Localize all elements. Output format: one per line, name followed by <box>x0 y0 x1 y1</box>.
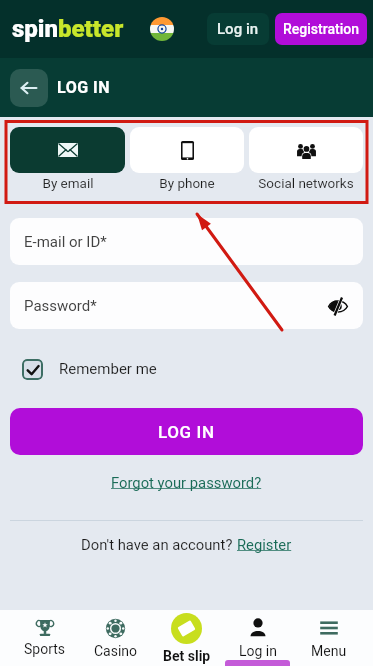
button[interactable]: By email <box>10 127 125 191</box>
button[interactable]: Language <box>150 17 174 41</box>
button[interactable]: By phone <box>130 127 244 191</box>
staticText: Bet slip <box>163 648 211 664</box>
button[interactable]: Casino <box>80 610 151 666</box>
staticText: Forgot your password? <box>111 474 262 491</box>
staticText: Social networks <box>258 175 354 191</box>
staticText: E-mail or ID* <box>24 233 107 251</box>
button[interactable]: Menu <box>293 610 364 666</box>
staticText: Registration <box>283 21 359 37</box>
staticText: Log in <box>239 643 277 659</box>
staticText: better <box>58 15 124 43</box>
button[interactable]: Log in <box>207 13 269 45</box>
staticText: spin <box>12 15 58 43</box>
button[interactable]: Log in <box>222 610 293 666</box>
staticText: Menu <box>311 643 347 659</box>
staticText: Remember me <box>59 360 157 378</box>
staticText: Password* <box>24 297 97 315</box>
staticText: By email <box>42 175 94 191</box>
button[interactable]: Forgot your password? <box>105 470 268 495</box>
staticText: By phone <box>159 175 215 191</box>
button[interactable]: Registration <box>275 13 367 45</box>
button[interactable]: LOG IN <box>10 408 363 455</box>
button[interactable]: Password* <box>10 282 363 329</box>
button[interactable]: Back <box>10 69 48 107</box>
staticText: LOG IN <box>57 78 111 97</box>
button[interactable]: Show password <box>326 294 350 318</box>
staticText: Sports <box>24 641 66 657</box>
staticText: LOG IN <box>158 422 215 442</box>
staticText: Register <box>237 536 292 553</box>
button[interactable]: Social networks <box>249 127 363 191</box>
button[interactable]: E-mail or ID* <box>10 218 363 265</box>
staticText: Casino <box>94 643 138 659</box>
button[interactable]: Sports <box>9 610 80 666</box>
staticText: Log in <box>217 20 259 38</box>
button[interactable]: Register <box>237 536 292 553</box>
staticText: Don't have an account? <box>81 536 237 553</box>
button[interactable]: Bet slip <box>151 610 222 666</box>
button[interactable]: Remember me <box>22 354 351 384</box>
